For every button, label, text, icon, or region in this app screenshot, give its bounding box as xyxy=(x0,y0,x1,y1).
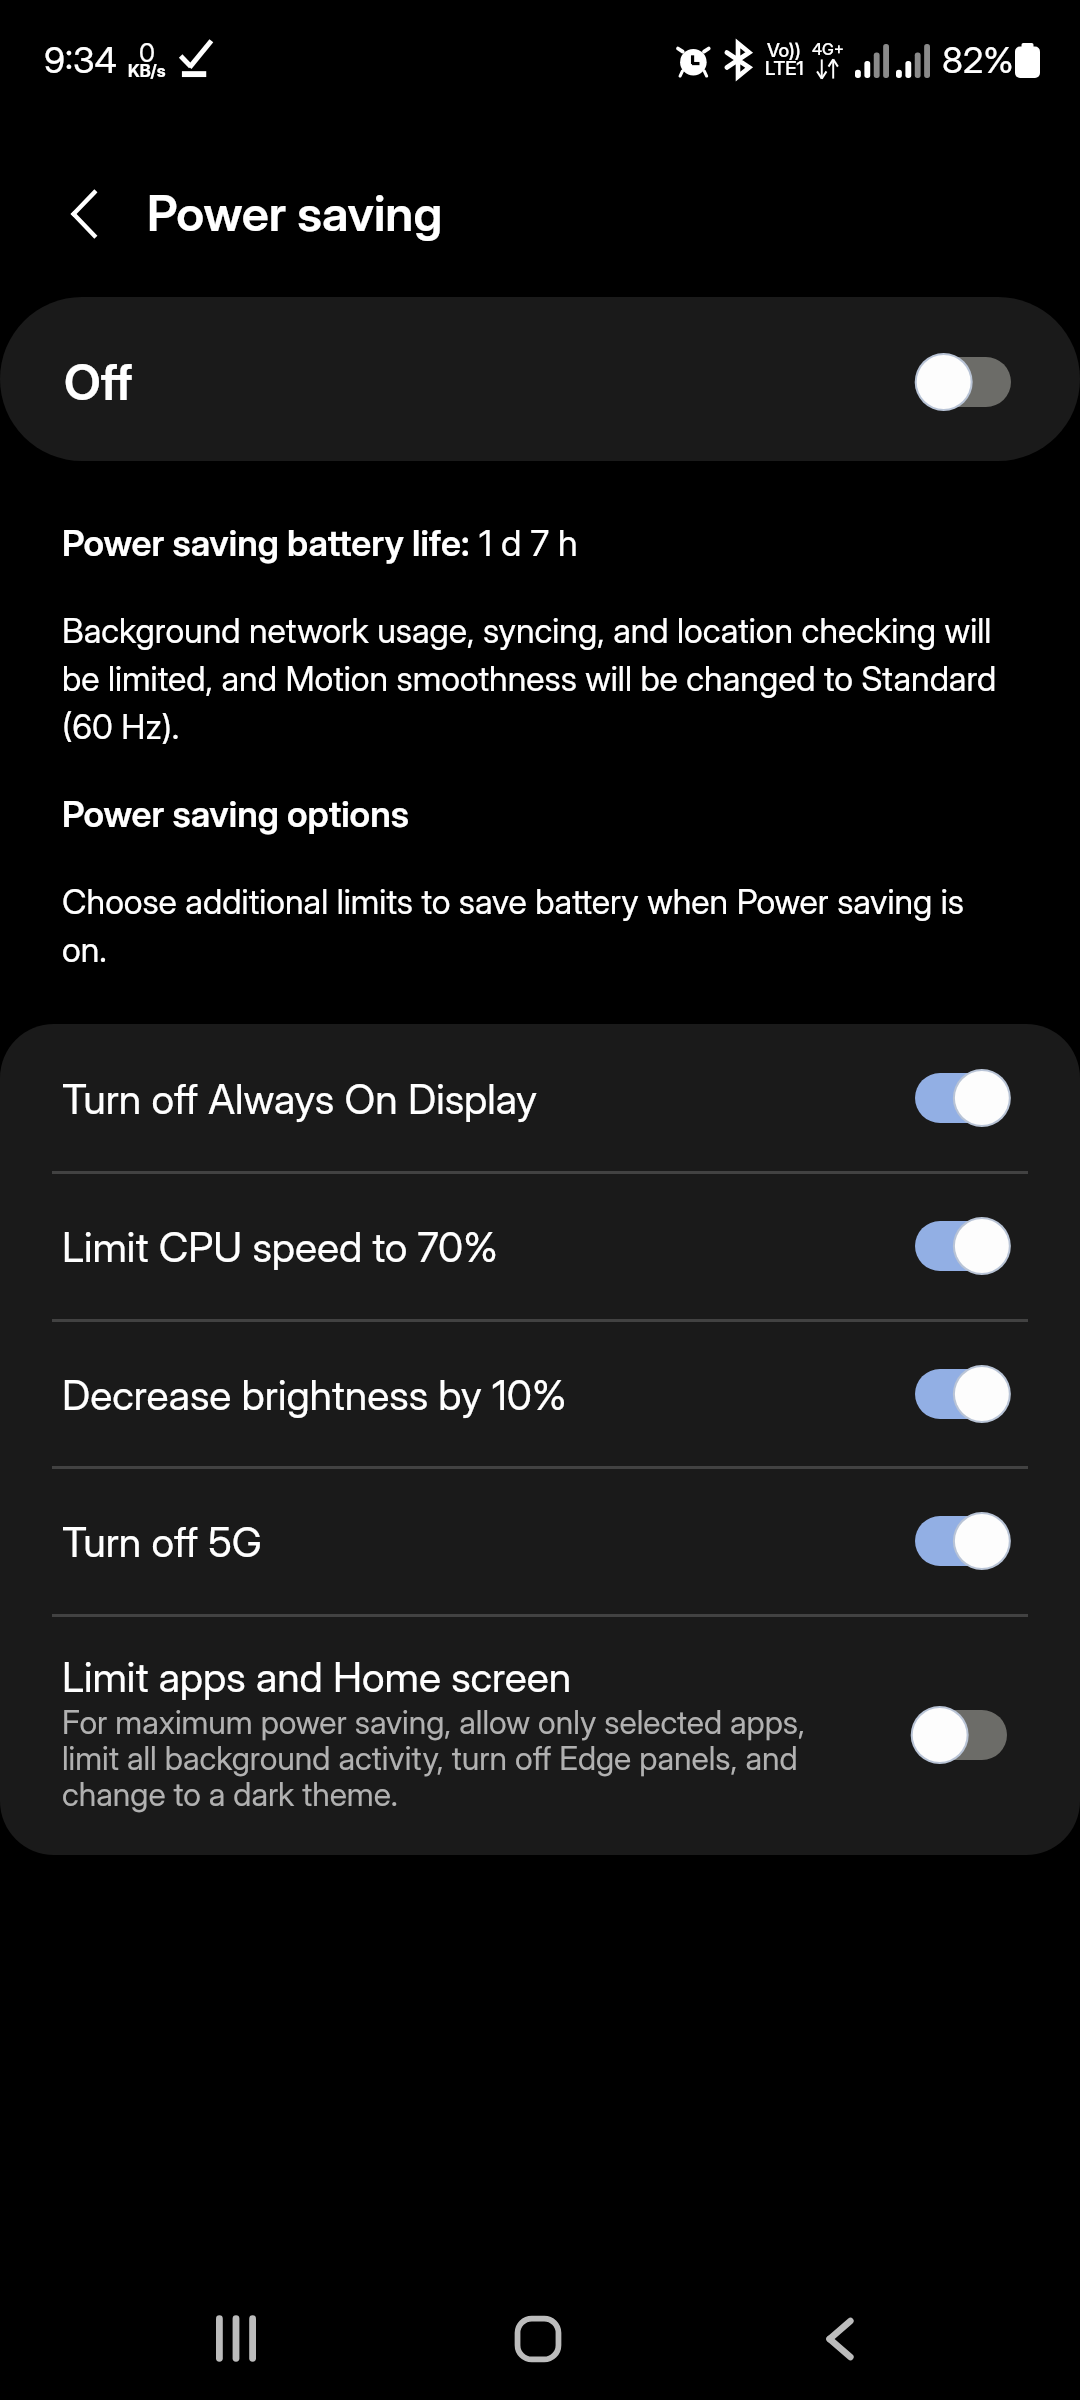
staticText: LTE1 xyxy=(765,59,804,79)
staticText: Limit CPU speed to 70% xyxy=(62,1220,498,1272)
staticText: 0 xyxy=(139,37,155,68)
button[interactable]: Off xyxy=(913,1706,1008,1764)
staticText: 1 d 7 h xyxy=(470,518,578,566)
button[interactable]: On xyxy=(915,1512,1010,1570)
staticText: Background network usage, syncing, and l… xyxy=(62,605,1012,749)
button[interactable]: Turn off 5G xyxy=(0,1467,1080,1614)
staticText: Power saving xyxy=(147,183,443,243)
button[interactable]: Back xyxy=(750,2277,930,2400)
button[interactable]: On xyxy=(915,1217,1010,1275)
button[interactable]: Home xyxy=(448,2277,628,2400)
staticText: Turn off 5G xyxy=(62,1515,262,1567)
staticText: 4G+ xyxy=(812,41,844,58)
staticText: Decrease brightness by 10% xyxy=(62,1368,567,1420)
button[interactable]: Off xyxy=(0,297,1080,461)
staticText: Power saving battery life: xyxy=(62,518,470,566)
staticText: Off xyxy=(64,352,133,412)
staticText: Choose additional limits to save battery… xyxy=(62,876,1012,972)
button[interactable]: Limit CPU speed to 70% xyxy=(0,1172,1080,1319)
staticText: For maximum power saving, allow only sel… xyxy=(62,1706,842,1814)
button[interactable]: Recent apps xyxy=(146,2277,326,2400)
button[interactable]: Turn off Always On Display xyxy=(0,1024,1080,1171)
staticText: Limit apps and Home screen xyxy=(62,1650,572,1702)
staticText: Turn off Always On Display xyxy=(62,1072,537,1124)
button[interactable]: Off xyxy=(917,353,1012,411)
staticText: Vo)) xyxy=(767,41,801,61)
button[interactable]: On xyxy=(915,1365,1010,1423)
button[interactable]: On xyxy=(915,1069,1010,1127)
staticText: 82% xyxy=(942,41,1014,81)
staticText: KB/s xyxy=(128,63,166,81)
button[interactable]: Decrease brightness by 10% xyxy=(0,1320,1080,1467)
button[interactable]: Navigate up xyxy=(42,177,120,255)
staticText: 9:34 xyxy=(44,41,117,81)
staticText: Power saving options xyxy=(62,789,409,837)
